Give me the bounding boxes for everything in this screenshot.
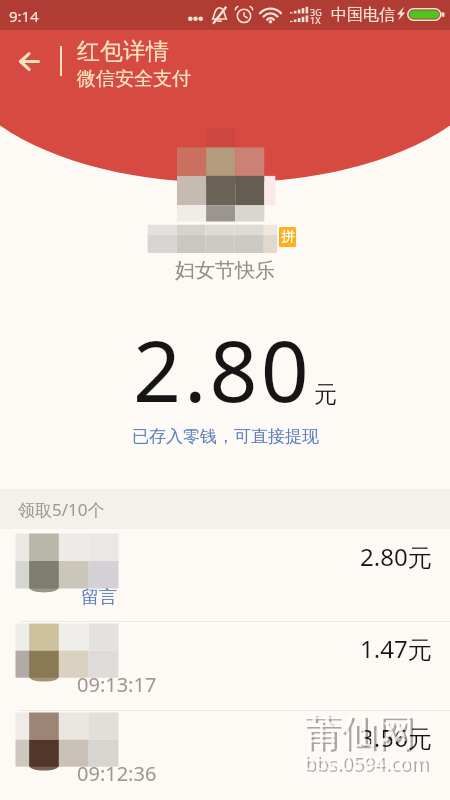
staticText: 元 (314, 380, 337, 409)
button[interactable]: Back (0, 32, 58, 90)
staticText: 已存入零钱，可直接提现 (132, 426, 319, 447)
staticText: 妇女节快乐 (175, 258, 275, 283)
staticText: 9:14 (9, 6, 39, 26)
staticText: 2.80元 (360, 540, 432, 573)
button[interactable]: 09:13:17 (0, 621, 450, 712)
staticText: bbs.0594.com (303, 750, 428, 776)
button[interactable]: 09:12:36 (0, 710, 450, 800)
staticText: 领取5/10个 (18, 498, 105, 521)
staticText: 3G (310, 6, 322, 18)
staticText: 微信安全支付 (77, 67, 191, 91)
staticText: 拼 (281, 228, 295, 246)
button[interactable]: 留言 (0, 529, 450, 620)
staticText: 1X (310, 14, 321, 26)
staticText: 3.56元 (360, 721, 432, 754)
staticText: 留言 (81, 586, 117, 609)
staticText: 莆仙网 (306, 711, 417, 758)
staticText: bbs.0594.com (306, 752, 431, 778)
staticText: 2.80 (133, 312, 312, 426)
staticText: 莆仙网 (303, 709, 414, 756)
staticText: 1.47元 (360, 632, 432, 665)
staticText: 红包详情 (77, 37, 169, 66)
staticText: 中国电信 (331, 5, 395, 25)
staticText: 09:12:36 (77, 760, 157, 787)
staticText: 09:13:17 (77, 671, 157, 698)
